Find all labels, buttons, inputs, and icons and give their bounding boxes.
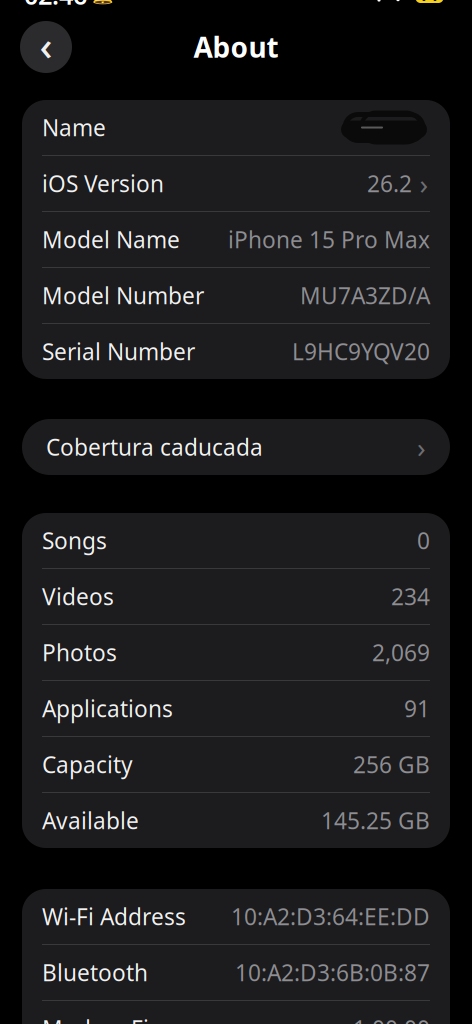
staticText: 91 <box>404 693 430 723</box>
staticText: Songs <box>42 525 107 555</box>
staticText: ‹ <box>39 18 52 71</box>
staticText: Serial Number <box>42 336 195 366</box>
staticText: › <box>419 165 428 202</box>
staticText: Model Number <box>42 280 204 310</box>
staticText: Model Name <box>42 224 180 254</box>
staticText: Bluetooth <box>42 957 148 987</box>
staticText: 234 <box>391 581 430 611</box>
staticText: Videos <box>42 581 114 611</box>
staticText: 1.00.00 <box>353 1013 430 1024</box>
staticText: Cobertura caducada <box>46 432 263 462</box>
staticText: 0 <box>417 525 430 555</box>
staticText: 10:A2:D3:6B:0B:87 <box>235 957 430 987</box>
staticText: Capacity <box>42 749 133 779</box>
staticText: L9HC9YQV20 <box>292 336 430 366</box>
staticText: › <box>417 428 426 466</box>
staticText: 🔔 <box>92 0 114 5</box>
staticText: 02:46 <box>24 0 87 12</box>
staticText: Photos <box>42 637 117 667</box>
staticText: 145.25 GB <box>321 805 430 835</box>
staticText: iOS Version <box>42 168 164 198</box>
staticText: 71 <box>420 0 438 6</box>
staticText: 26.2 <box>367 168 412 198</box>
staticText: Wi-Fi Address <box>42 901 186 931</box>
staticText: Modem Firmware <box>42 1013 232 1024</box>
staticText: About <box>193 28 278 66</box>
staticText: Name <box>42 112 106 142</box>
staticText: 2,069 <box>372 637 430 667</box>
staticText: Applications <box>42 693 173 723</box>
staticText: 10:A2:D3:64:EE:DD <box>231 901 430 931</box>
staticText: Available <box>42 805 139 835</box>
button[interactable]: Back <box>20 21 72 73</box>
staticText: MU7A3ZD/A <box>300 280 430 310</box>
button[interactable]: Cobertura caducada <box>22 419 450 475</box>
staticText: iPhone 15 Pro Max <box>228 224 430 254</box>
staticText: 256 GB <box>353 749 430 779</box>
